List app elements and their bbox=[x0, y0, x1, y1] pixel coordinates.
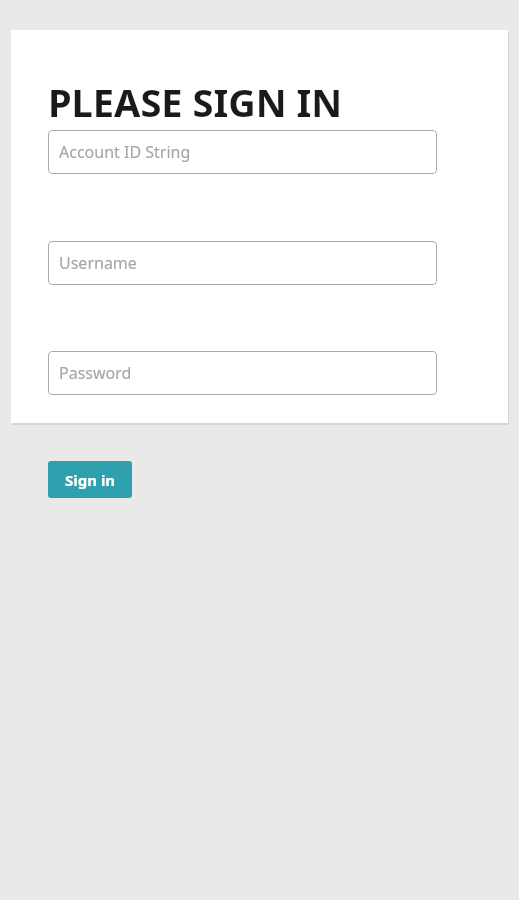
staticText: Account ID String bbox=[59, 141, 191, 163]
button[interactable]: Password bbox=[48, 351, 437, 395]
button[interactable]: Account ID String bbox=[48, 130, 437, 174]
staticText: Sign in bbox=[65, 470, 116, 490]
button[interactable]: Sign in bbox=[48, 461, 132, 498]
staticText: Password bbox=[59, 362, 132, 384]
staticText: PLEASE SIGN IN bbox=[48, 76, 343, 124]
staticText: Username bbox=[59, 252, 137, 274]
button[interactable]: Username bbox=[48, 241, 437, 285]
